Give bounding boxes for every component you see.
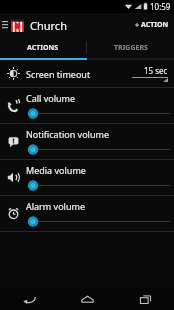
button[interactable]: Media volume	[0, 160, 174, 195]
button[interactable]: 15 sec	[132, 65, 168, 82]
staticText: Screen timeout	[26, 68, 91, 80]
staticText: Call volume	[26, 92, 76, 104]
staticText: ACTIONS	[27, 43, 59, 53]
button[interactable]: Volume slider	[26, 216, 170, 227]
button[interactable]: ACTIONS	[0, 37, 86, 58]
staticText: Media volume	[26, 164, 86, 176]
button[interactable]: Home	[58, 288, 116, 310]
staticText: Church	[30, 18, 67, 33]
button[interactable]: TRIGGERS	[87, 37, 174, 58]
staticText: ACTION	[141, 20, 169, 30]
button[interactable]: Navigate up	[0, 13, 9, 37]
button[interactable]: Recent apps	[116, 288, 174, 310]
button[interactable]: Alarm volume	[0, 196, 174, 231]
button[interactable]: Call volume	[0, 88, 174, 123]
button[interactable]: Volume slider	[26, 144, 170, 155]
staticText: Alarm volume	[26, 200, 85, 212]
staticText: 10:59	[150, 1, 171, 12]
button[interactable]: Volume slider	[26, 108, 170, 119]
button[interactable]: Volume slider	[26, 180, 170, 191]
button[interactable]: Screen timeout	[0, 60, 174, 87]
button[interactable]: Notification volume	[0, 124, 174, 159]
button[interactable]: Back	[0, 288, 58, 310]
staticText: Notification volume	[26, 128, 109, 140]
staticText: TRIGGERS	[114, 43, 148, 53]
staticText: 15 sec	[144, 65, 168, 76]
button[interactable]: ACTION	[130, 13, 174, 37]
